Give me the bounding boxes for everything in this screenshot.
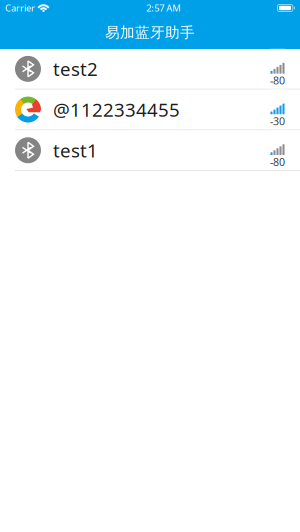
staticText: -80 <box>270 73 285 87</box>
staticText: test2 <box>53 56 98 81</box>
staticText: -30 <box>270 114 285 128</box>
button[interactable]: @1122334455 <box>0 90 300 130</box>
staticText: -80 <box>270 155 285 169</box>
staticText: Carrier <box>5 2 35 14</box>
button[interactable]: test2 <box>0 49 300 90</box>
staticText: 易加蓝牙助手 <box>105 23 195 41</box>
staticText: 2:57 AM <box>146 2 180 14</box>
staticText: @1122334455 <box>53 97 180 122</box>
staticText: test1 <box>53 138 98 163</box>
button[interactable]: test1 <box>0 130 300 171</box>
